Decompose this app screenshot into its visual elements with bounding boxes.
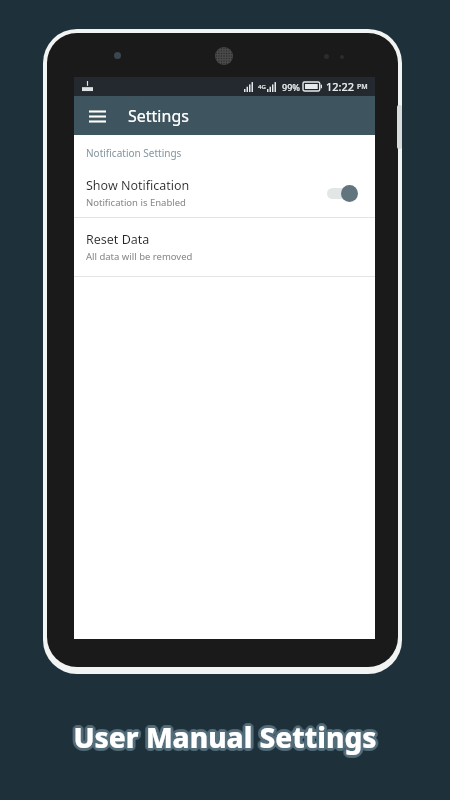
staticText: Notification is Enabled: [86, 196, 186, 209]
staticText: User Manual Settings: [73, 715, 377, 753]
staticText: User Manual Settings: [73, 717, 377, 755]
staticText: User Manual Settings: [73, 719, 377, 757]
staticText: User Manual Settings: [74, 715, 378, 753]
staticText: User Manual Settings: [73, 716, 377, 754]
staticText: User Manual Settings: [72, 717, 376, 755]
button[interactable]: Reset Data: [74, 218, 375, 276]
staticText: Settings: [128, 105, 189, 127]
staticText: User Manual Settings: [74, 718, 378, 756]
staticText: User Manual Settings: [70, 717, 374, 755]
staticText: User Manual Settings: [72, 719, 376, 757]
staticText: User Manual Settings: [75, 719, 379, 757]
staticText: User Manual Settings: [71, 719, 375, 757]
staticText: User Manual Settings: [76, 718, 380, 756]
staticText: Reset Data: [86, 231, 150, 248]
staticText: User Manual Settings: [72, 718, 376, 756]
staticText: User Manual Settings: [70, 719, 374, 757]
staticText: User Manual Settings: [76, 719, 380, 757]
staticText: User Manual Settings: [74, 717, 378, 755]
button[interactable]: Show Notification: [74, 169, 375, 217]
staticText: User Manual Settings: [72, 715, 376, 753]
staticText: User Manual Settings: [72, 716, 376, 754]
staticText: User Manual Settings: [73, 720, 377, 758]
button[interactable]: Toggle notifications: [325, 182, 363, 204]
button[interactable]: Open navigation drawer: [82, 101, 112, 131]
staticText: Show Notification: [86, 177, 190, 194]
staticText: User Manual Settings: [73, 718, 377, 756]
staticText: Notification Settings: [86, 146, 182, 160]
staticText: User Manual Settings: [71, 718, 375, 756]
staticText: User Manual Settings: [75, 716, 379, 754]
staticText: User Manual Settings: [73, 721, 377, 759]
staticText: User Manual Settings: [71, 717, 375, 755]
staticText: User Manual Settings: [72, 721, 376, 759]
staticText: User Manual Settings: [75, 717, 379, 755]
staticText: User Manual Settings: [74, 716, 378, 754]
staticText: User Manual Settings: [74, 721, 378, 759]
staticText: User Manual Settings: [74, 720, 378, 758]
staticText: User Manual Settings: [74, 719, 378, 757]
staticText: User Manual Settings: [75, 720, 379, 758]
staticText: 99%: [282, 81, 300, 93]
staticText: User Manual Settings: [71, 720, 375, 758]
staticText: User Manual Settings: [72, 720, 376, 758]
staticText: User Manual Settings: [71, 716, 375, 754]
staticText: User Manual Settings: [76, 717, 380, 755]
staticText: 12:22: [326, 79, 355, 94]
staticText: User Manual Settings: [75, 718, 379, 756]
staticText: 4G: [258, 83, 266, 91]
staticText: All data will be removed: [86, 250, 193, 263]
staticText: PM: [357, 82, 368, 92]
staticText: User Manual Settings: [70, 718, 374, 756]
